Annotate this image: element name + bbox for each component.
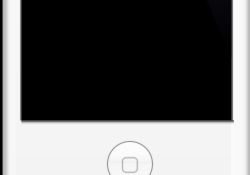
button[interactable]: Home [107,141,153,175]
